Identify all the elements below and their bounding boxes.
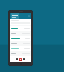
button[interactable]: Toolbar	[10, 13, 31, 19]
button[interactable]	[10, 46, 31, 51]
button[interactable]	[10, 36, 31, 41]
button[interactable]: Record	[19, 58, 22, 61]
button[interactable]	[10, 41, 31, 46]
button[interactable]: Option one	[16, 58, 18, 60]
button[interactable]: Option two	[23, 58, 25, 60]
button[interactable]	[11, 13, 19, 19]
button[interactable]	[10, 31, 31, 36]
button[interactable]	[10, 51, 31, 56]
button[interactable]	[10, 26, 31, 31]
